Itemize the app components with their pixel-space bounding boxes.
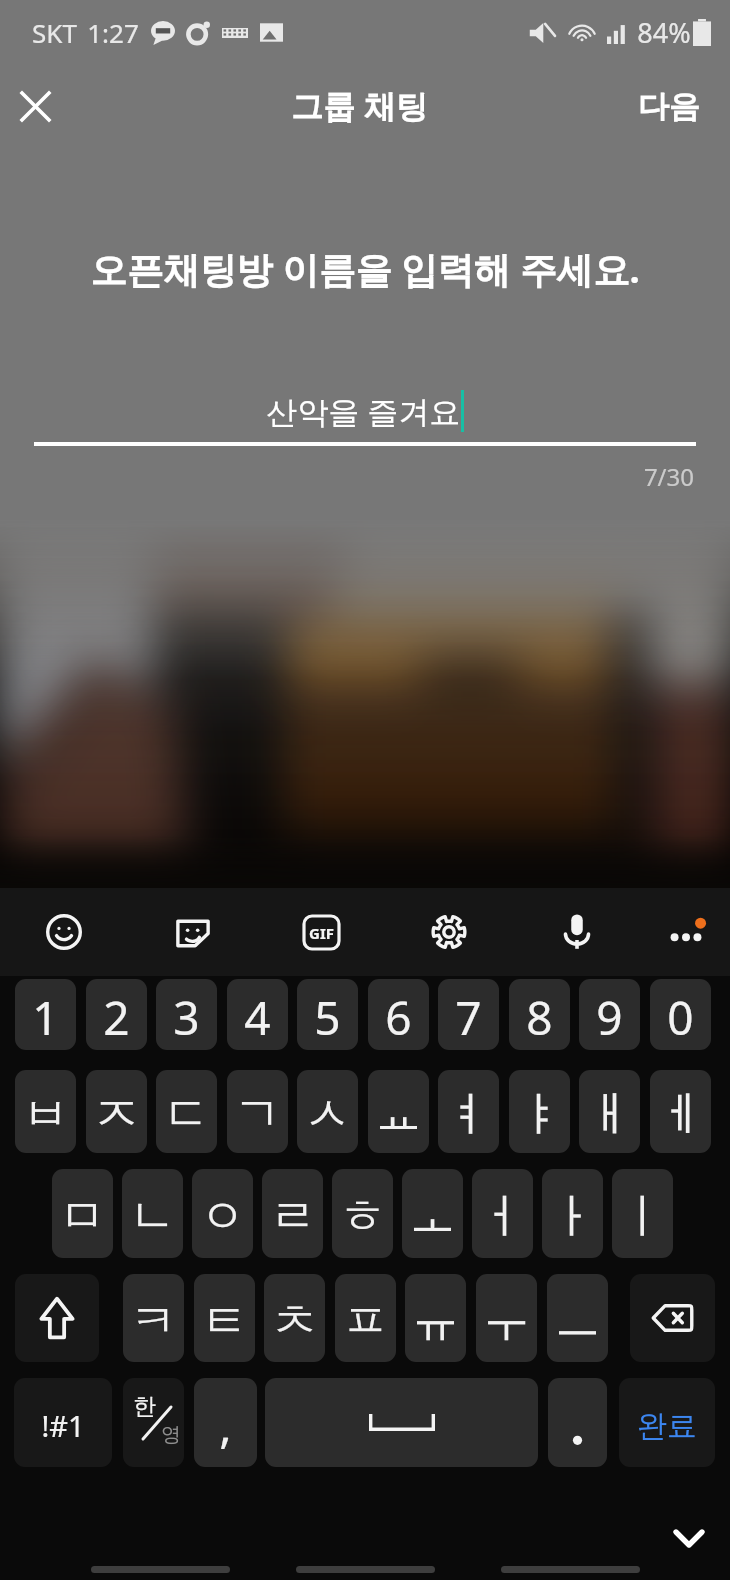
- button[interactable]: 7: [438, 979, 499, 1050]
- button[interactable]: ㅛ: [368, 1070, 429, 1153]
- staticText: 다음: [638, 87, 700, 126]
- button[interactable]: ㅣ: [612, 1169, 673, 1258]
- staticText: ㅌ: [201, 1292, 248, 1351]
- button[interactable]: !#1: [14, 1378, 112, 1467]
- button[interactable]: ㅑ: [509, 1070, 570, 1153]
- button[interactable]: ㅌ: [194, 1274, 255, 1362]
- staticText: ㅈ: [93, 1085, 140, 1144]
- staticText: ㅂ: [22, 1085, 69, 1144]
- staticText: 5: [314, 986, 341, 1049]
- staticText: GIF: [309, 923, 334, 943]
- staticText: 3: [173, 986, 200, 1049]
- staticText: ㅓ: [479, 1187, 526, 1246]
- staticText: 6: [385, 986, 412, 1049]
- button[interactable]: settings: [411, 888, 487, 976]
- button[interactable]: ㅊ: [264, 1274, 325, 1362]
- staticText: ㅗ: [409, 1187, 456, 1246]
- button[interactable]: Hide keyboard: [661, 1510, 717, 1566]
- button[interactable]: dot: [548, 1378, 607, 1467]
- button[interactable]: ㅍ: [335, 1274, 396, 1362]
- staticText: 완료: [637, 1407, 697, 1445]
- staticText: ㄱ: [234, 1085, 281, 1144]
- staticText: ㅡ: [554, 1292, 601, 1351]
- button[interactable]: ㅐ: [579, 1070, 640, 1153]
- button[interactable]: ㄴ: [122, 1169, 183, 1258]
- staticText: 오픈채팅방 이름을 입력해 주세요.: [0, 244, 730, 294]
- staticText: 2: [103, 986, 130, 1049]
- button[interactable]: ㅅ: [297, 1070, 358, 1153]
- button[interactable]: gif: [283, 888, 359, 976]
- button[interactable]: 8: [509, 979, 570, 1050]
- button[interactable]: sticker: [155, 888, 231, 976]
- staticText: ,: [219, 1394, 232, 1457]
- staticText: 8: [526, 986, 553, 1049]
- button[interactable]: ㅠ: [405, 1274, 466, 1362]
- button[interactable]: 1: [15, 979, 76, 1050]
- staticText: ㅣ: [619, 1187, 666, 1246]
- button[interactable]: ㅇ: [192, 1169, 253, 1258]
- button[interactable]: 0: [650, 979, 711, 1050]
- button[interactable]: 5: [297, 979, 358, 1050]
- staticText: ㅇ: [199, 1187, 246, 1246]
- staticText: 84%: [637, 14, 691, 51]
- button[interactable]: 3: [156, 979, 217, 1050]
- button[interactable]: ㅡ: [547, 1274, 608, 1362]
- staticText: ㅊ: [271, 1292, 318, 1351]
- button[interactable]: lang: [123, 1378, 184, 1467]
- staticText: 1: [32, 986, 59, 1049]
- staticText: ㅏ: [549, 1187, 596, 1246]
- staticText: ㅜ: [483, 1292, 530, 1351]
- button[interactable]: emoji: [26, 888, 102, 976]
- button[interactable]: ㄱ: [227, 1070, 288, 1153]
- staticText: ㅑ: [516, 1085, 563, 1144]
- staticText: 그룹 채팅: [291, 84, 428, 128]
- button[interactable]: 9: [579, 979, 640, 1050]
- staticText: 1:27: [87, 15, 139, 50]
- button[interactable]: ㅜ: [476, 1274, 537, 1362]
- button[interactable]: more: [648, 888, 724, 976]
- button[interactable]: ㅗ: [402, 1169, 463, 1258]
- staticText: ㅔ: [657, 1085, 704, 1144]
- button[interactable]: ㅋ: [123, 1274, 184, 1362]
- button[interactable]: shift: [15, 1274, 99, 1362]
- staticText: ㄴ: [129, 1187, 176, 1246]
- staticText: ㅕ: [445, 1085, 492, 1144]
- staticText: ㅎ: [339, 1187, 386, 1246]
- button[interactable]: 완료: [619, 1378, 715, 1467]
- staticText: 한: [133, 1392, 156, 1421]
- button[interactable]: ㅈ: [86, 1070, 147, 1153]
- button[interactable]: ㅂ: [15, 1070, 76, 1153]
- button[interactable]: ㅁ: [52, 1169, 113, 1258]
- staticText: !#1: [41, 1406, 85, 1445]
- staticText: 7: [455, 986, 482, 1049]
- staticText: ㅋ: [130, 1292, 177, 1351]
- button[interactable]: 4: [227, 979, 288, 1050]
- staticText: ㅛ: [375, 1085, 422, 1144]
- button[interactable]: del: [630, 1274, 715, 1362]
- button[interactable]: ㄹ: [262, 1169, 323, 1258]
- staticText: ㅍ: [342, 1292, 389, 1351]
- staticText: 산악을 즐겨요: [266, 390, 461, 432]
- button[interactable]: ㅏ: [542, 1169, 603, 1258]
- staticText: ㅅ: [304, 1085, 351, 1144]
- button[interactable]: ,: [194, 1378, 257, 1467]
- button[interactable]: space: [265, 1378, 538, 1467]
- button[interactable]: ㄷ: [156, 1070, 217, 1153]
- staticText: 0: [667, 986, 694, 1049]
- button[interactable]: ㅓ: [472, 1169, 533, 1258]
- staticText: ㄹ: [269, 1187, 316, 1246]
- staticText: SKT: [32, 15, 77, 50]
- button[interactable]: ㅎ: [332, 1169, 393, 1258]
- button[interactable]: 6: [368, 979, 429, 1050]
- button[interactable]: 2: [86, 979, 147, 1050]
- staticText: ㅐ: [586, 1085, 633, 1144]
- button[interactable]: Close: [9, 80, 61, 132]
- button[interactable]: ㅔ: [650, 1070, 711, 1153]
- staticText: ㄷ: [163, 1085, 210, 1144]
- staticText: 영: [161, 1422, 181, 1447]
- staticText: 7/30: [0, 460, 694, 493]
- button[interactable]: ㅕ: [438, 1070, 499, 1153]
- button[interactable]: 다음: [630, 77, 708, 136]
- staticText: ㅠ: [412, 1292, 459, 1351]
- button[interactable]: mic: [539, 888, 615, 976]
